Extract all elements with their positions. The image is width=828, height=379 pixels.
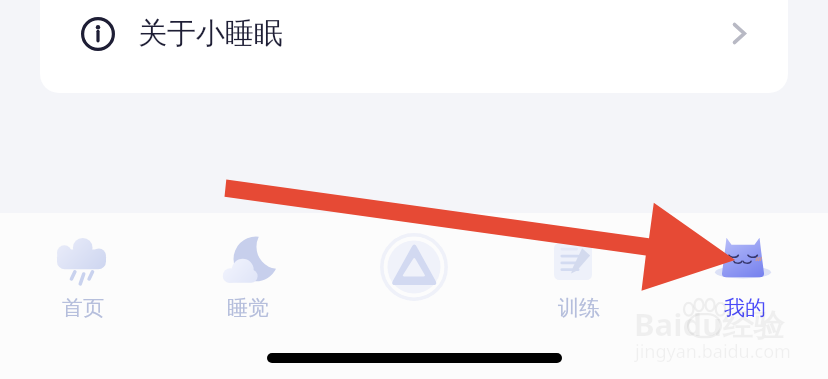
button[interactable]: 睡觉 — [165, 233, 330, 321]
button[interactable]: 添加 — [330, 233, 496, 295]
button[interactable]: 关于小睡眠 — [40, 0, 788, 67]
staticText: Baidu经验 — [634, 303, 785, 345]
staticText: 关于小睡眠 — [138, 15, 283, 52]
staticText: 首页 — [62, 295, 104, 321]
staticText: jingyan.baidu.com — [635, 339, 791, 364]
button[interactable]: 训练 — [496, 233, 662, 321]
staticText: 我的 — [724, 295, 766, 321]
button[interactable]: 首页 — [0, 233, 165, 321]
button[interactable]: 我的 — [662, 233, 828, 321]
staticText: 睡觉 — [227, 295, 269, 321]
staticText: 训练 — [558, 295, 600, 321]
